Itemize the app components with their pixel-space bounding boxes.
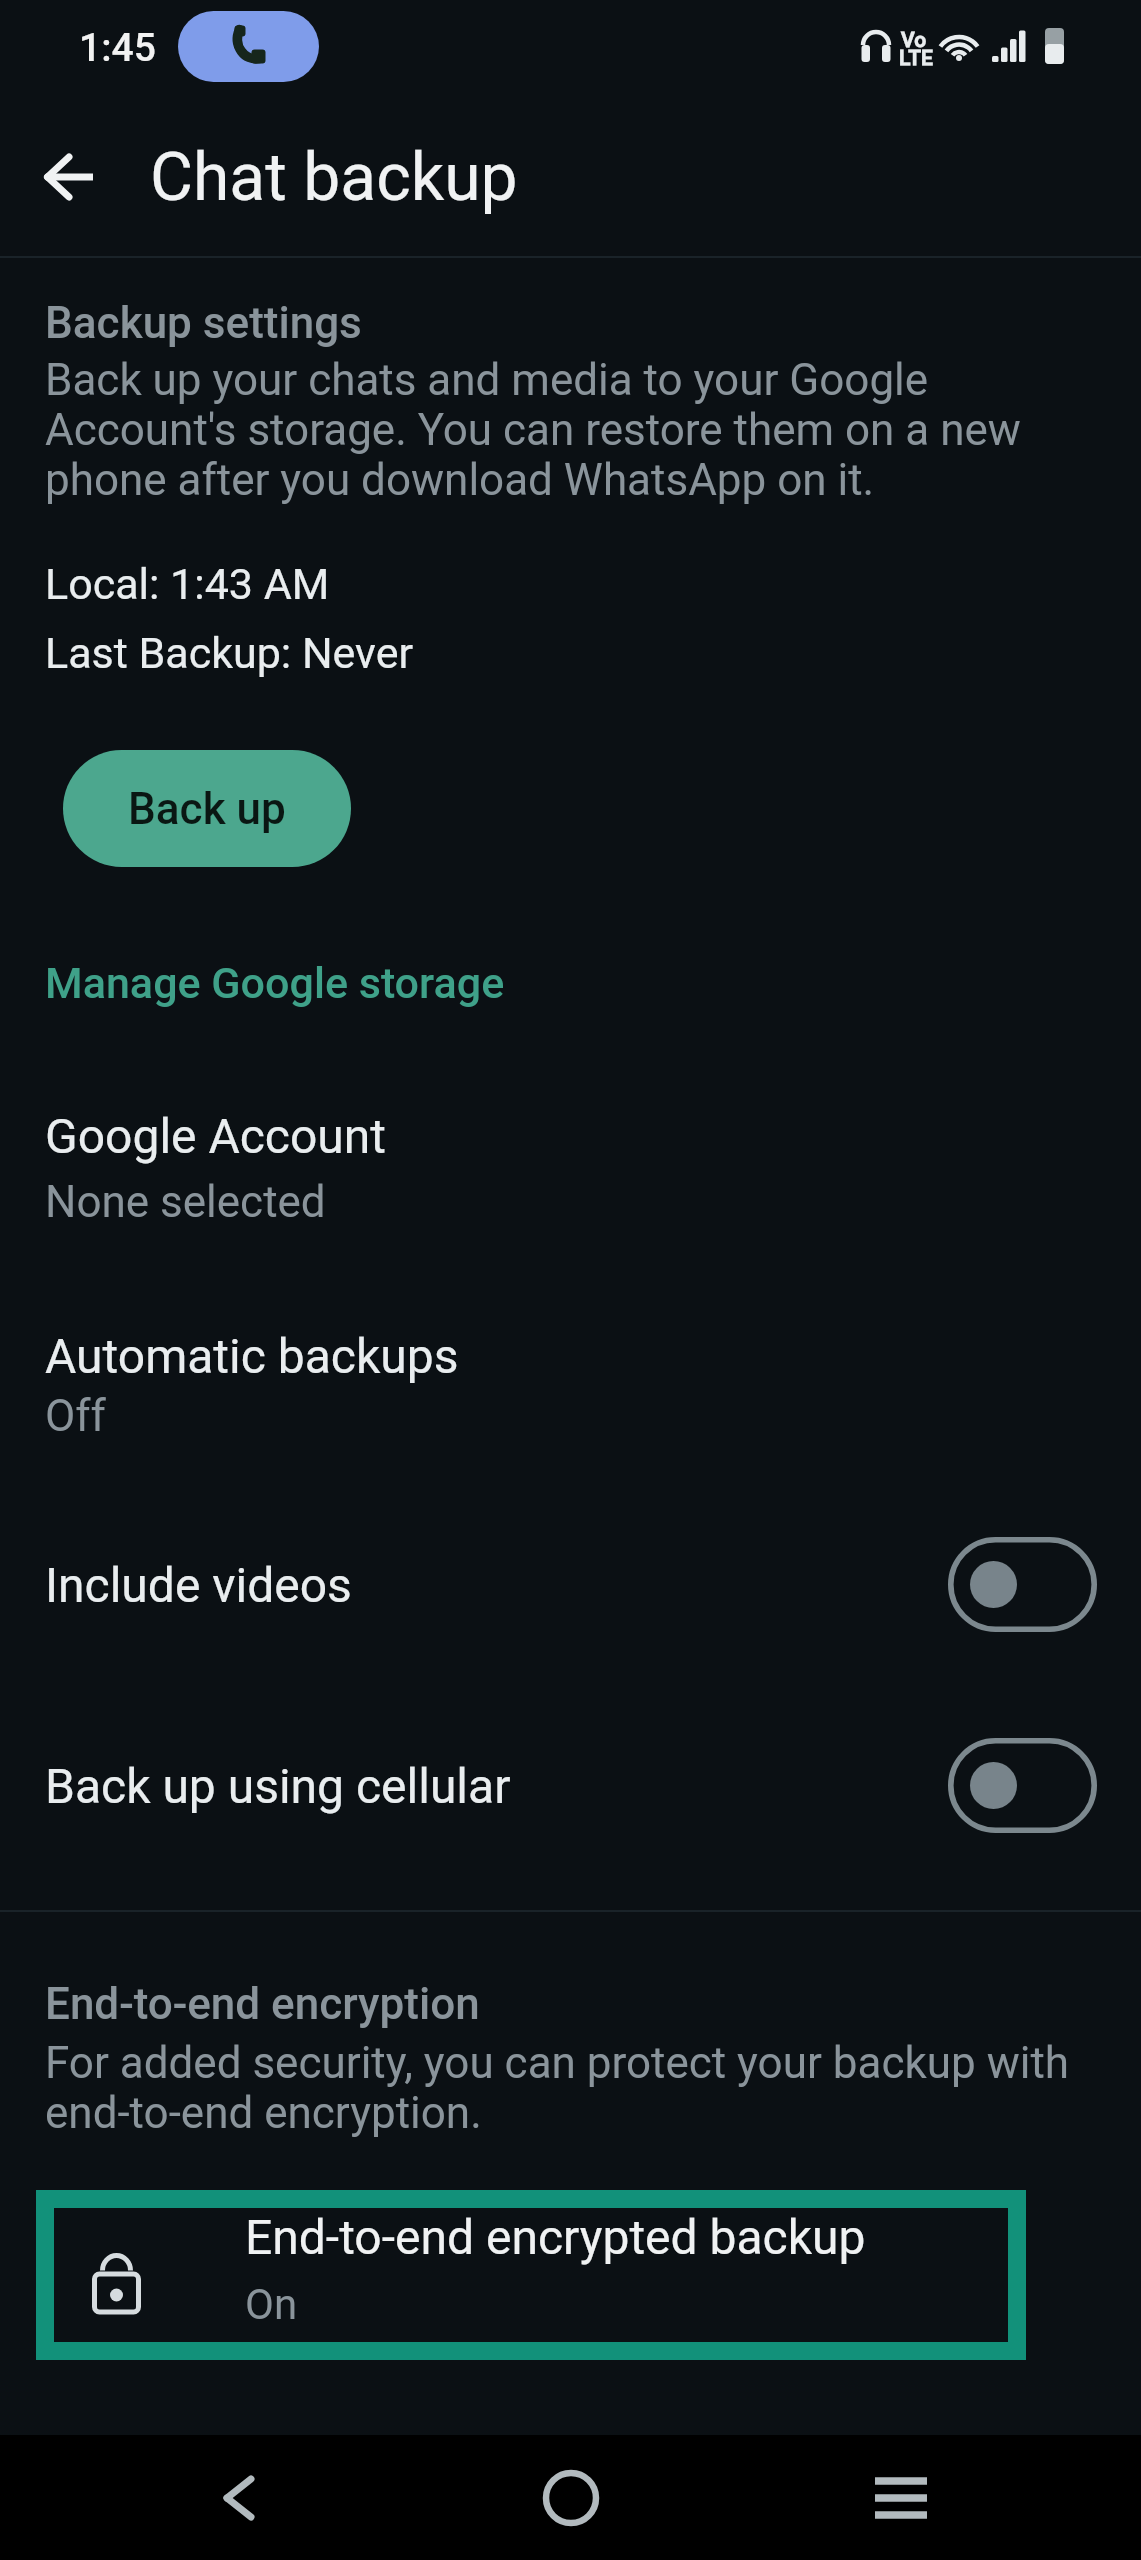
button[interactable]: Back up using cellular: [0, 1720, 1141, 1870]
staticText: Local: 1:43 AM: [45, 559, 330, 609]
button[interactable]: Manage Google storage: [0, 940, 1141, 1030]
button[interactable]: Back: [179, 2435, 299, 2560]
staticText: LTE: [899, 46, 933, 71]
staticText: End-to-end encrypted backup: [245, 2209, 866, 2265]
staticText: Google Account: [45, 1108, 387, 1164]
button[interactable]: Back up: [63, 750, 351, 867]
staticText: Last Backup: Never: [45, 628, 414, 678]
staticText: Vo: [901, 28, 927, 53]
staticText: Automatic backups: [45, 1328, 459, 1384]
button[interactable]: Include videos: [0, 1520, 1141, 1670]
button[interactable]: Back: [23, 132, 112, 221]
staticText: Back up your chats and media to your Goo…: [45, 354, 1050, 505]
staticText: On: [245, 2280, 298, 2329]
staticText: Chat backup: [150, 139, 518, 216]
staticText: Backup settings: [45, 297, 362, 349]
staticText: Back up: [128, 783, 286, 835]
staticText: For added security, you can protect your…: [45, 2037, 1095, 2138]
staticText: Manage Google storage: [45, 958, 505, 1008]
staticText: End-to-end encryption: [45, 1978, 480, 2030]
button[interactable]: Include videos toggle, off: [948, 1537, 1097, 1632]
staticText: None selected: [45, 1176, 326, 1228]
button[interactable]: End-to-end encrypted backup: [36, 2190, 1026, 2360]
button[interactable]: Automatic backups: [0, 1300, 1141, 1450]
staticText: Off: [45, 1390, 106, 1442]
staticText: Include videos: [45, 1557, 352, 1613]
button[interactable]: Back up using cellular toggle, off: [948, 1738, 1097, 1833]
button[interactable]: Google Account: [0, 1080, 1141, 1230]
staticText: 1:45: [79, 25, 156, 71]
button[interactable]: Recent apps: [841, 2435, 961, 2560]
staticText: Back up using cellular: [45, 1758, 511, 1814]
button[interactable]: Home: [511, 2435, 631, 2560]
